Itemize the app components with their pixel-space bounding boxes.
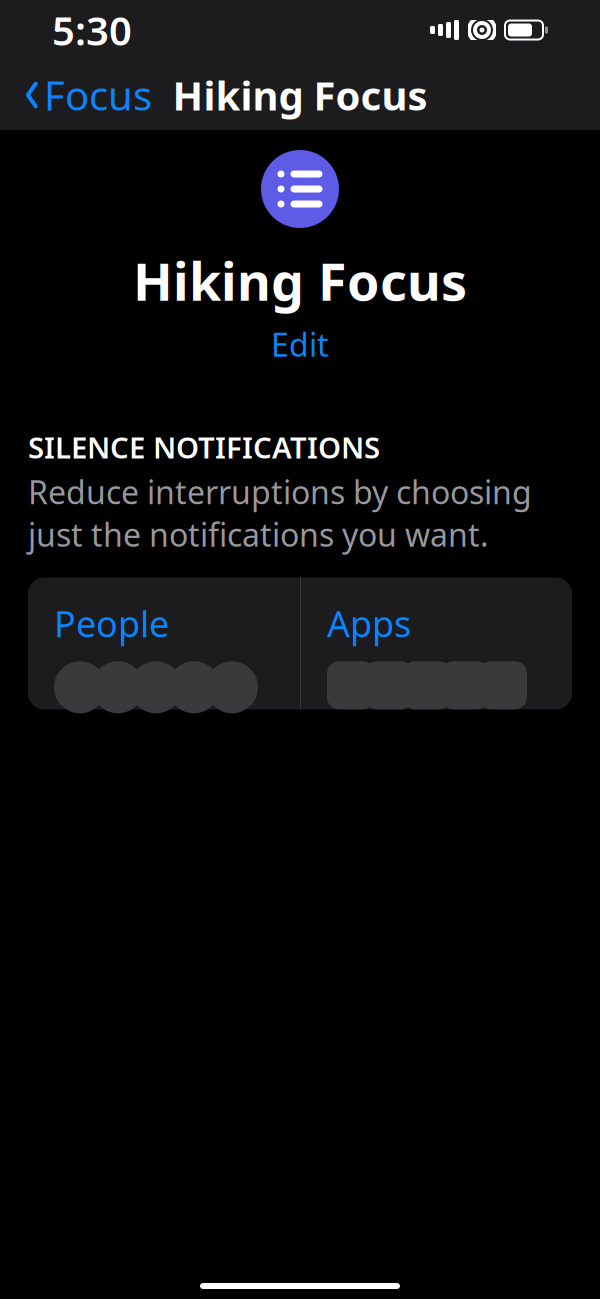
staticText: SILENCE NOTIFICATIONS [28,427,380,466]
staticText: Focus [44,68,152,121]
button[interactable]: 5:30 [47,966,219,1292]
staticText: 5:30 [52,3,132,56]
staticText: Reduce interruptions by choosing just th… [28,470,532,555]
button[interactable]: Focus [8,58,168,131]
button[interactable]: Edit [257,319,343,370]
button[interactable]: People [28,577,300,709]
staticText: Choose [242,1236,368,1284]
staticText: Hiking Focus [172,68,427,121]
staticText: Edit [271,323,329,366]
staticText: Hiking Focus [133,246,467,315]
staticText: Apps [327,599,411,647]
staticText: People [54,599,169,647]
button[interactable]: Choose [219,966,391,1292]
button[interactable]: Apps [301,577,572,709]
